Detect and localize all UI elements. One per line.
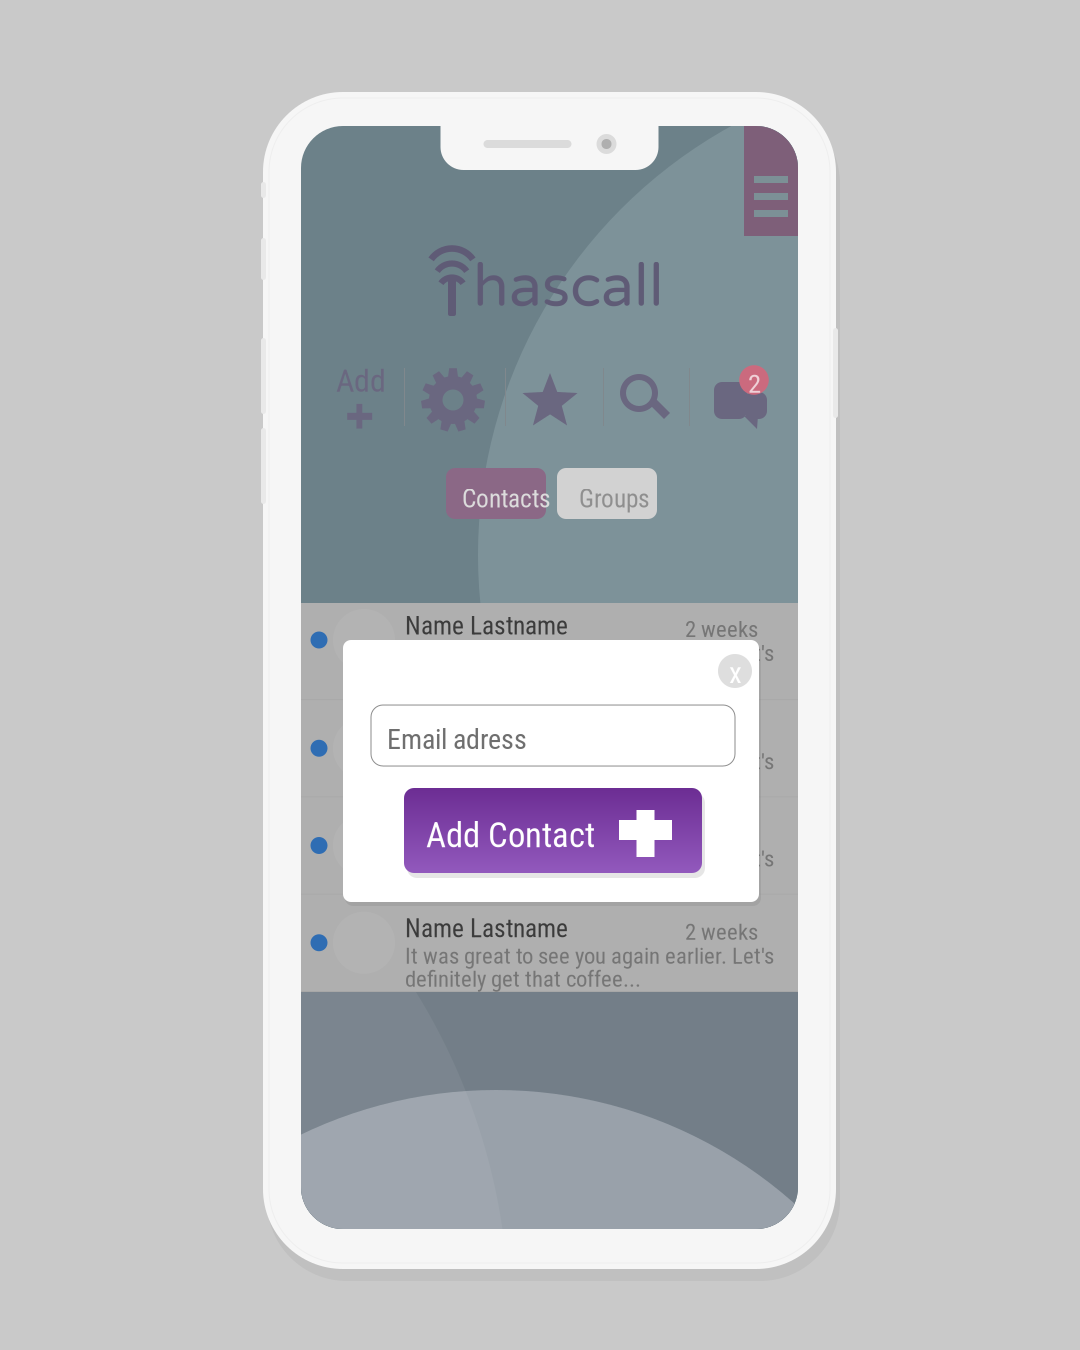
button[interactable]: Contacts bbox=[446, 468, 546, 519]
staticText: 2 weeks bbox=[685, 919, 758, 945]
button[interactable]: Name Lastname bbox=[301, 700, 798, 797]
button[interactable]: Groups bbox=[557, 468, 657, 519]
staticText: Groups bbox=[579, 484, 650, 514]
staticText: x bbox=[729, 656, 742, 690]
staticText: definitely get that coffee... bbox=[405, 868, 641, 895]
staticText: It was great to see you again earlier. L… bbox=[405, 943, 774, 969]
staticText: Add Contact bbox=[426, 815, 595, 856]
button[interactable]: Add contact bbox=[335, 366, 393, 436]
staticText: It was great to see you again earlier. L… bbox=[405, 845, 774, 872]
button[interactable]: Name Lastname bbox=[301, 603, 798, 700]
button[interactable]: Search bbox=[618, 372, 672, 428]
staticText: hascall bbox=[473, 252, 664, 323]
staticText: It was great to see you again earlier. L… bbox=[405, 748, 774, 775]
staticText: Name Lastname bbox=[405, 719, 568, 749]
button[interactable]: Add Contact bbox=[404, 788, 705, 878]
staticText: definitely get that coffee... bbox=[405, 771, 641, 798]
staticText: It was great to see you again earlier. L… bbox=[405, 640, 774, 667]
button[interactable]: Messages bbox=[712, 366, 782, 432]
staticText: Add bbox=[336, 362, 386, 399]
staticText: Contacts bbox=[462, 484, 551, 514]
staticText: definitely get that coffee... bbox=[405, 966, 641, 992]
staticText: Name Lastname bbox=[405, 611, 568, 641]
staticText: 2 weeks bbox=[685, 724, 758, 751]
staticText: 2 weeks bbox=[685, 616, 758, 643]
button[interactable]: Name Lastname bbox=[301, 797, 798, 895]
button[interactable]: Favourites bbox=[521, 372, 579, 428]
staticText: 2 weeks bbox=[685, 821, 758, 848]
staticText: Name Lastname bbox=[405, 914, 568, 943]
button[interactable]: Name Lastname bbox=[301, 895, 798, 992]
staticText: 2 bbox=[748, 368, 761, 399]
button[interactable]: Menu bbox=[744, 126, 798, 236]
button[interactable]: Close bbox=[718, 654, 752, 688]
staticText: Email adress bbox=[387, 723, 527, 756]
button[interactable]: Settings bbox=[421, 368, 485, 432]
staticText: Name Lastname bbox=[405, 816, 568, 846]
